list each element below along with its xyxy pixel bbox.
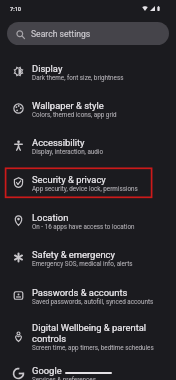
staticText: Screen time, app timers, bedtime schedul… bbox=[32, 344, 154, 351]
staticText: Location bbox=[32, 212, 69, 223]
staticText: Search settings bbox=[31, 29, 91, 39]
staticText: 7:10 bbox=[10, 6, 22, 13]
staticText: Saved passwords, autofill, synced accoun… bbox=[32, 298, 154, 305]
button[interactable]: Search settings bbox=[7, 22, 169, 45]
staticText: App security, device lock, permissions bbox=[32, 185, 138, 192]
staticText: Safety & emergency bbox=[32, 249, 115, 260]
button[interactable]: Google bbox=[0, 355, 176, 380]
staticText: Services & preferences bbox=[32, 376, 96, 380]
button[interactable]: Safety & emergency bbox=[0, 239, 176, 276]
button[interactable]: Location bbox=[0, 202, 176, 239]
button[interactable]: Digital Wellbeing & parental controls bbox=[0, 318, 176, 355]
button[interactable]: Passwords & accounts bbox=[0, 277, 176, 314]
staticText: Emergency SOS, medical info, alerts bbox=[32, 260, 133, 267]
staticText: Wallpaper & style bbox=[32, 100, 104, 111]
button[interactable]: Display bbox=[0, 53, 176, 90]
staticText: Accessibility bbox=[32, 137, 85, 148]
button[interactable]: Security & privacy bbox=[0, 164, 176, 201]
staticText: Digital Wellbeing & parental controls bbox=[32, 322, 176, 344]
staticText: Security & privacy bbox=[32, 174, 106, 185]
staticText: Display, interaction, audio bbox=[32, 148, 103, 155]
button[interactable]: Accessibility bbox=[0, 127, 176, 164]
staticText: On - 16 apps have access to location bbox=[32, 223, 135, 230]
button[interactable]: Wallpaper & style bbox=[0, 90, 176, 127]
staticText: Dark theme, font size, brightness bbox=[32, 74, 124, 81]
staticText: Display bbox=[32, 63, 63, 74]
staticText: Colors, themed icons, app grid bbox=[32, 111, 117, 118]
staticText: Passwords & accounts bbox=[32, 287, 128, 298]
staticText: Google bbox=[32, 365, 62, 376]
